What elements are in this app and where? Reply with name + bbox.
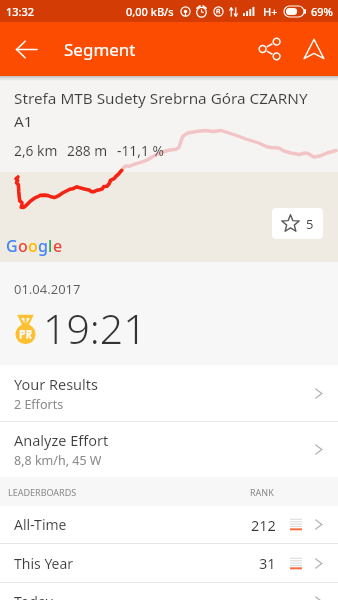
staticText: 13:32: [6, 4, 35, 19]
staticText: 212: [251, 515, 276, 535]
staticText: -11,1 %: [117, 141, 164, 160]
staticText: 2,6 km: [14, 141, 58, 160]
staticText: 19:21: [43, 300, 147, 356]
staticText: RANK: [250, 486, 274, 498]
staticText: All-Time: [14, 515, 251, 534]
button[interactable]: Analyze Effort: [0, 422, 338, 477]
staticText: Today: [14, 592, 311, 600]
button[interactable]: Today: [0, 583, 338, 600]
staticText: 31: [259, 553, 276, 573]
staticText: 2 Efforts: [14, 396, 64, 413]
staticText: Your Results: [14, 374, 98, 394]
staticText: 288 m: [67, 141, 108, 160]
button[interactable]: Navigate: [292, 27, 336, 71]
button[interactable]: Your Results: [0, 365, 338, 421]
staticText: o: [18, 235, 28, 257]
staticText: l: [48, 235, 53, 257]
button[interactable]: Share: [248, 27, 292, 71]
staticText: 01.04.2017: [14, 280, 81, 298]
button[interactable]: All-Time: [0, 506, 338, 543]
button[interactable]: Star segment, 5: [272, 208, 323, 239]
staticText: 5: [306, 215, 314, 233]
button[interactable]: This Year: [0, 544, 338, 582]
staticText: A1: [14, 111, 33, 132]
staticText: g: [38, 235, 48, 257]
staticText: Segment: [64, 38, 136, 61]
staticText: Strefa MTB Sudety Srebrna Góra CZARNY: [14, 88, 308, 109]
staticText: LEADERBOARDS: [8, 486, 77, 498]
staticText: G: [6, 235, 18, 257]
staticText: e: [53, 235, 63, 257]
staticText: Analyze Effort: [14, 430, 109, 450]
button[interactable]: Back: [5, 28, 47, 70]
staticText: 8,8 km/h, 45 W: [14, 452, 102, 469]
staticText: 69%: [311, 4, 333, 19]
staticText: This Year: [14, 554, 259, 573]
staticText: o: [28, 235, 38, 257]
staticText: 0,00 kB/s: [126, 4, 174, 19]
staticText: H+: [263, 4, 278, 19]
